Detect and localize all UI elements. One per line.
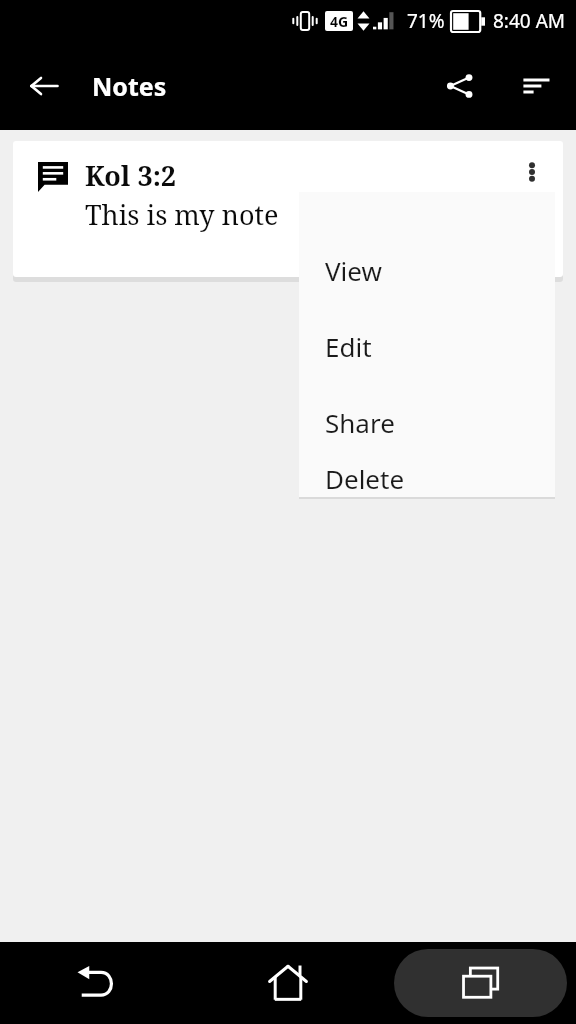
button[interactable]: Share [299,384,555,460]
button[interactable]: Home [192,942,384,1024]
button[interactable]: Edit [299,308,555,384]
staticText: Edit [325,329,372,364]
button[interactable]: Back [16,58,72,114]
button[interactable]: Kol 3:2 [13,141,563,277]
staticText: 4G [330,12,349,31]
staticText: This is my note [85,196,279,233]
staticText: Notes [92,69,167,103]
button[interactable]: Back [0,942,192,1024]
button[interactable]: View [299,232,555,308]
staticText: 8:40 AM [493,8,566,34]
button[interactable]: More options [507,147,557,197]
staticText: Kol 3:2 [85,157,177,194]
button[interactable]: Recent apps [394,949,567,1017]
staticText: 71% [407,8,445,34]
staticText: Delete [325,461,405,496]
staticText: View [325,253,382,288]
staticText: Share [325,405,395,440]
button[interactable]: Sort [508,58,564,114]
button[interactable]: Share [432,58,488,114]
button[interactable]: Delete [299,460,555,497]
